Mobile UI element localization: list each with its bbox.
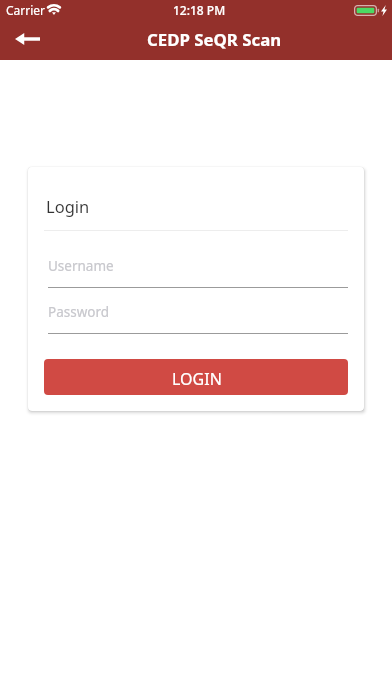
staticText: 12:18 PM (173, 2, 226, 18)
button[interactable]: Back (5, 19, 49, 59)
staticText: Password (48, 303, 110, 321)
staticText: CEDP SeQR Scan (147, 28, 282, 51)
staticText: LOGIN (172, 368, 222, 390)
staticText: Carrier (6, 2, 46, 18)
staticText: Login (46, 195, 90, 217)
button[interactable]: LOGIN (44, 359, 348, 395)
staticText: Username (48, 257, 114, 275)
